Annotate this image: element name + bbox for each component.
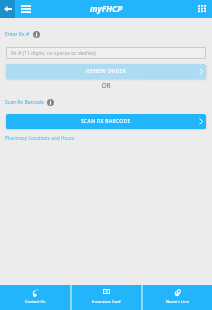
staticText: Rx # (11 digits, no spaces or dashes) <box>11 50 96 57</box>
button[interactable]: SCAN RX BARCODE <box>6 114 206 129</box>
staticText: Scan Rx Barcode <box>5 99 44 106</box>
staticText: Contact Us <box>25 299 46 304</box>
staticText: myFHCP <box>90 3 123 14</box>
button[interactable]: REVIEW ORDER <box>6 64 206 79</box>
staticText: Enter Rx # <box>5 31 30 38</box>
button[interactable]: Back <box>0 0 15 18</box>
button[interactable]: Contact Us <box>0 285 70 310</box>
button[interactable]: Menu <box>15 0 36 18</box>
staticText: REVIEW ORDER <box>86 68 127 75</box>
staticText: Nurse's Line <box>166 299 189 304</box>
button[interactable]: Pharmacy Locations and Hours <box>5 135 75 141</box>
button[interactable]: Nurse's Line <box>143 285 212 310</box>
staticText: Insurance Card <box>92 299 121 304</box>
staticText: SCAN RX BARCODE <box>81 118 131 125</box>
button[interactable]: Rx # (11 digits, no spaces or dashes) <box>6 47 206 59</box>
button[interactable]: Apps <box>192 0 212 18</box>
staticText: OR <box>0 81 212 90</box>
button[interactable]: Insurance Card <box>72 285 141 310</box>
